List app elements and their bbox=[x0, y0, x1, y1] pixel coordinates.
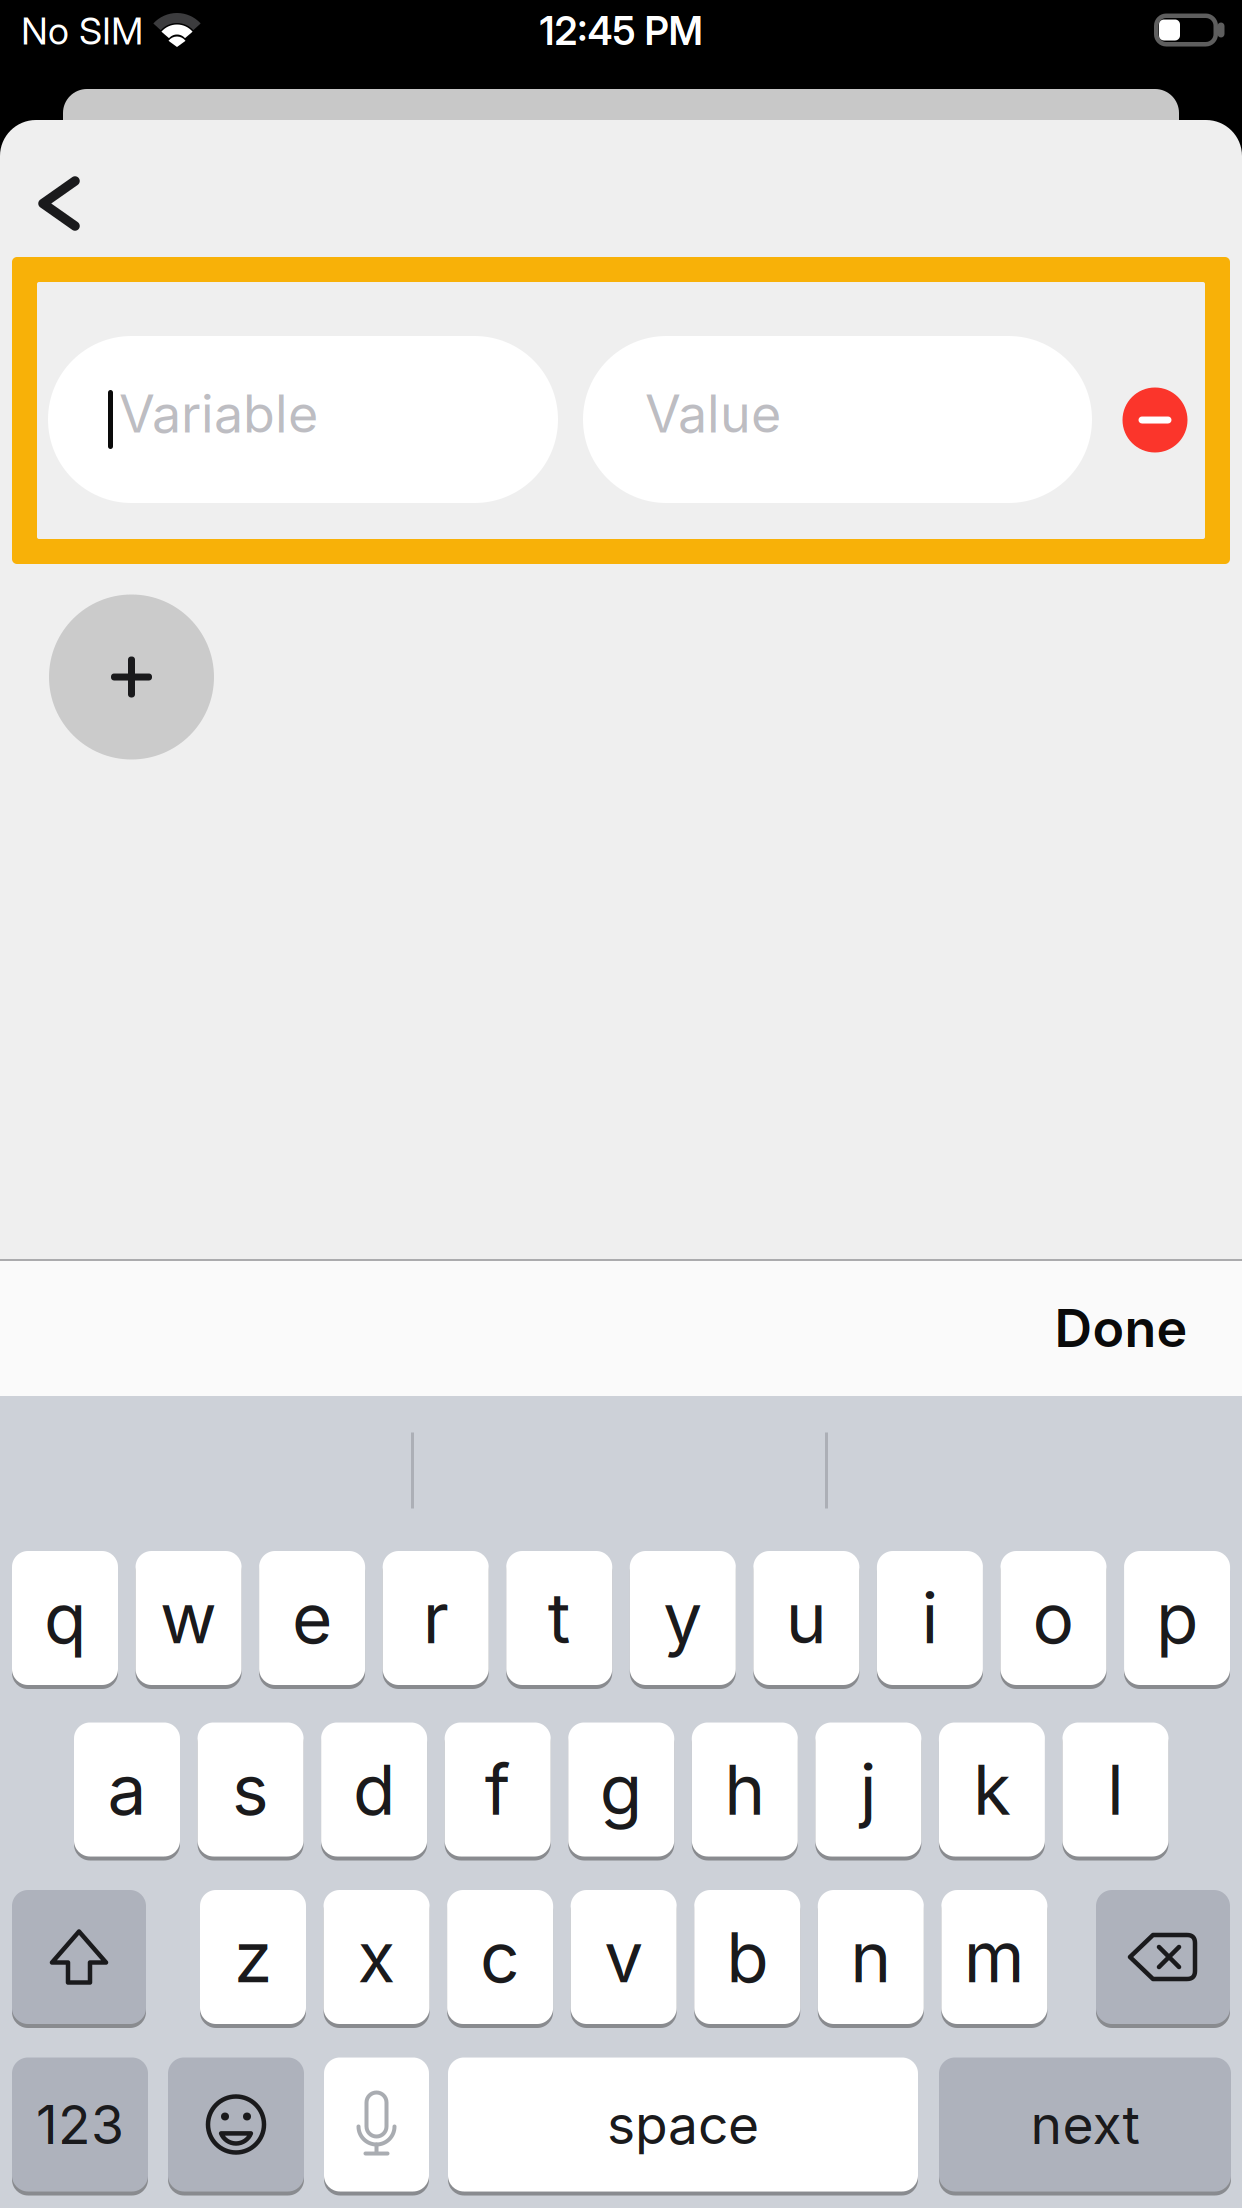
button[interactable]: b bbox=[694, 1890, 800, 2024]
button[interactable]: w bbox=[136, 1551, 242, 1685]
button[interactable]: a bbox=[74, 1722, 180, 1856]
button[interactable]: Add bbox=[49, 594, 214, 759]
staticText: space bbox=[607, 2093, 759, 2156]
button[interactable]: z bbox=[200, 1890, 306, 2024]
button[interactable]: p bbox=[1124, 1551, 1230, 1685]
button[interactable]: n bbox=[818, 1890, 924, 2024]
button[interactable]: Shift bbox=[12, 1890, 146, 2024]
button[interactable]: k bbox=[939, 1722, 1045, 1856]
button[interactable]: e bbox=[259, 1551, 365, 1685]
button[interactable]: j bbox=[815, 1722, 921, 1856]
button[interactable]: Done bbox=[1054, 1297, 1187, 1359]
button[interactable]: space bbox=[448, 2057, 918, 2191]
button[interactable]: Back bbox=[12, 158, 102, 248]
staticText: Value bbox=[645, 383, 781, 444]
button[interactable]: Remove bbox=[1122, 387, 1187, 452]
button[interactable]: x bbox=[324, 1890, 430, 2024]
staticText: s bbox=[232, 1749, 269, 1830]
staticText: Variable bbox=[119, 383, 318, 444]
button[interactable]: i bbox=[877, 1551, 983, 1685]
staticText: g bbox=[600, 1749, 643, 1830]
staticText: j bbox=[860, 1749, 877, 1830]
button[interactable]: 123 bbox=[12, 2057, 148, 2191]
button[interactable]: s bbox=[198, 1722, 304, 1856]
staticText: l bbox=[1107, 1749, 1124, 1830]
button[interactable]: f bbox=[445, 1722, 551, 1856]
staticText: q bbox=[44, 1577, 86, 1659]
staticText: i bbox=[921, 1577, 938, 1659]
staticText: h bbox=[724, 1749, 765, 1830]
button[interactable]: u bbox=[753, 1551, 859, 1685]
staticText: r bbox=[423, 1577, 449, 1659]
staticText: d bbox=[353, 1749, 395, 1830]
button[interactable]: r bbox=[383, 1551, 489, 1685]
staticText: m bbox=[964, 1916, 1025, 1998]
button[interactable]: g bbox=[568, 1722, 674, 1856]
button[interactable]: Dictate bbox=[324, 2057, 429, 2191]
button[interactable]: Value bbox=[583, 336, 1092, 503]
staticText: 123 bbox=[36, 2093, 124, 2156]
button[interactable]: l bbox=[1062, 1722, 1168, 1856]
button[interactable]: Variable bbox=[48, 336, 558, 503]
button[interactable]: h bbox=[692, 1722, 798, 1856]
staticText: a bbox=[107, 1749, 146, 1830]
staticText: next bbox=[1030, 2093, 1139, 2156]
staticText: Done bbox=[1054, 1297, 1187, 1359]
staticText: n bbox=[850, 1916, 891, 1998]
staticText: No SIM bbox=[21, 9, 143, 53]
staticText: c bbox=[480, 1916, 520, 1998]
staticText: x bbox=[358, 1916, 396, 1998]
staticText: t bbox=[548, 1577, 571, 1659]
staticText: v bbox=[604, 1916, 643, 1998]
staticText: o bbox=[1032, 1577, 1074, 1659]
button[interactable]: y bbox=[630, 1551, 736, 1685]
button[interactable]: Emoji bbox=[168, 2057, 304, 2191]
button[interactable]: c bbox=[447, 1890, 553, 2024]
staticText: w bbox=[160, 1577, 217, 1659]
staticText: p bbox=[1156, 1577, 1198, 1659]
button[interactable]: d bbox=[321, 1722, 427, 1856]
button[interactable]: v bbox=[571, 1890, 677, 2024]
button[interactable]: q bbox=[12, 1551, 118, 1685]
staticText: y bbox=[663, 1577, 702, 1659]
staticText: 12:45 PM bbox=[539, 8, 702, 54]
staticText: u bbox=[786, 1577, 827, 1659]
button[interactable]: t bbox=[506, 1551, 612, 1685]
staticText: z bbox=[234, 1916, 272, 1998]
staticText: k bbox=[973, 1749, 1011, 1830]
button[interactable]: next bbox=[939, 2057, 1231, 2191]
staticText: e bbox=[292, 1577, 332, 1659]
staticText: b bbox=[726, 1916, 768, 1998]
button[interactable]: o bbox=[1000, 1551, 1106, 1685]
staticText: f bbox=[485, 1749, 511, 1830]
button[interactable]: m bbox=[941, 1890, 1047, 2024]
button[interactable]: Delete bbox=[1096, 1890, 1230, 2024]
